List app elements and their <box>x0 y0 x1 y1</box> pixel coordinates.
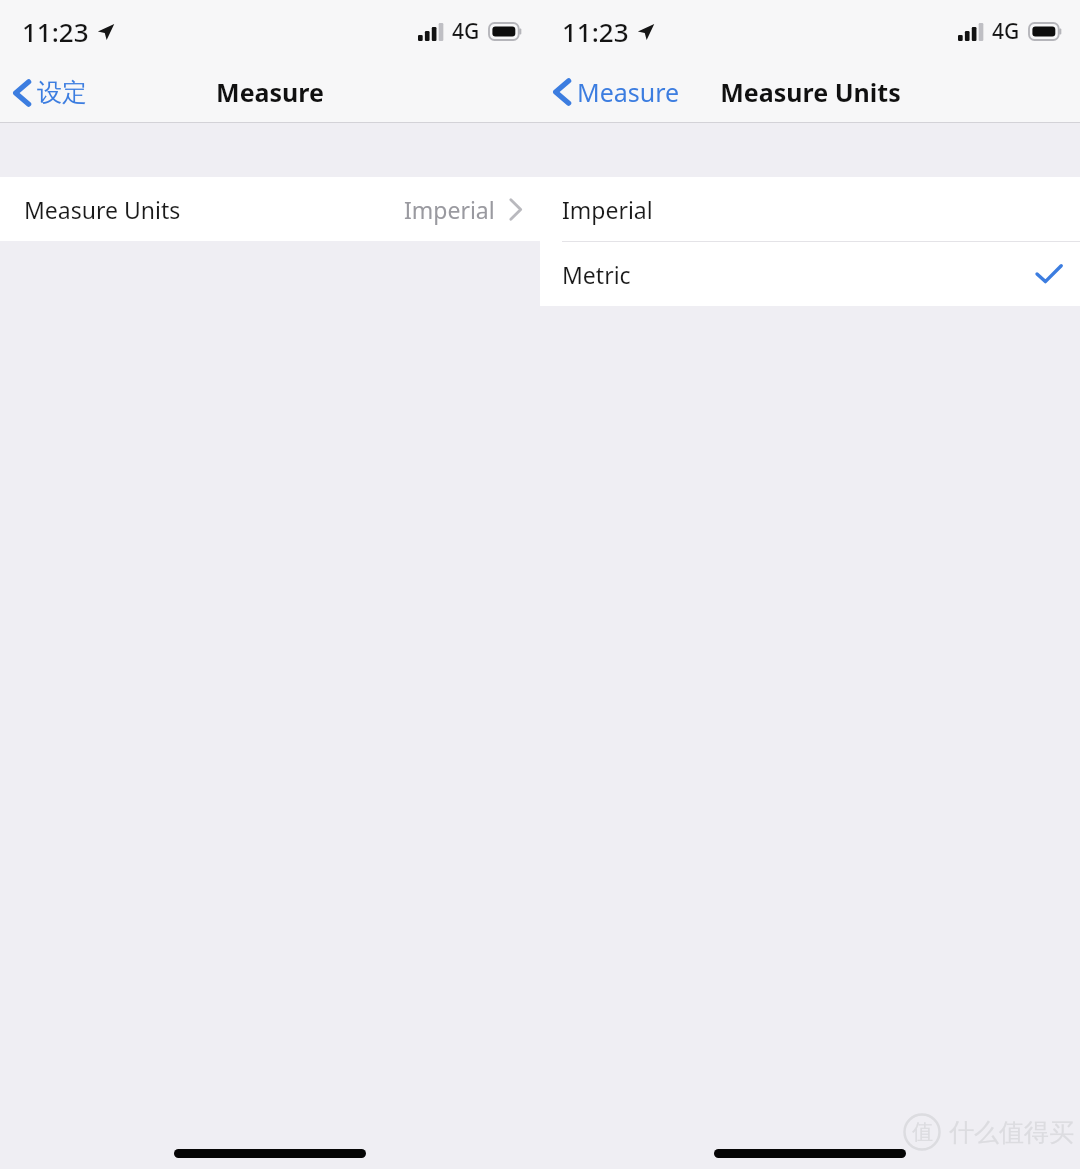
staticText: 值 <box>912 1119 933 1145</box>
staticText: 4G <box>992 17 1020 46</box>
staticText: Imperial <box>562 194 653 225</box>
staticText: Imperial <box>404 194 495 225</box>
staticText: Measure <box>216 75 324 109</box>
button[interactable]: 设定 <box>0 71 97 114</box>
staticText: Measure Units <box>720 75 901 109</box>
button[interactable]: Metric <box>540 242 1080 306</box>
staticText: 11:23 <box>562 14 629 49</box>
staticText: 什么值得买 <box>949 1117 1074 1148</box>
staticText: 4G <box>452 17 480 46</box>
staticText: Metric <box>562 259 631 290</box>
staticText: Measure <box>577 75 680 109</box>
staticText: Measure Units <box>24 194 181 225</box>
button[interactable]: Measure Units <box>0 177 540 241</box>
other: Selected <box>1036 264 1062 284</box>
staticText: 11:23 <box>22 14 89 49</box>
button[interactable]: Imperial <box>540 177 1080 241</box>
staticText: 设定 <box>37 77 87 108</box>
button[interactable]: Measure <box>540 69 690 115</box>
